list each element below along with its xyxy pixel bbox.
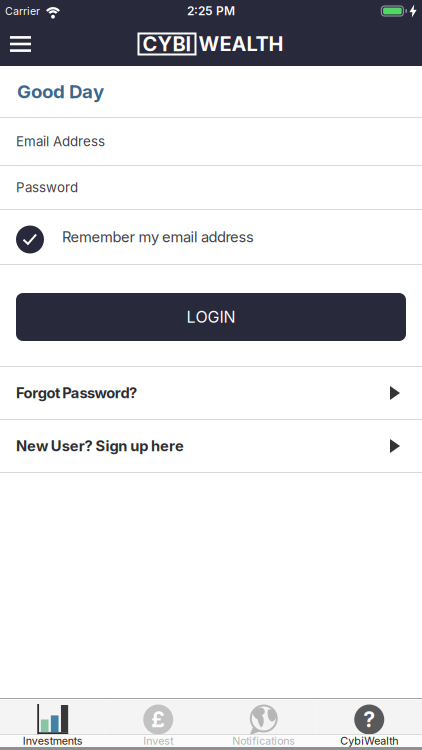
button[interactable]: Email Address	[0, 118, 422, 165]
staticText: Password	[16, 180, 78, 195]
staticText: LOGIN	[186, 308, 235, 326]
button[interactable]: New User? Sign up here	[0, 420, 422, 472]
staticText: New User? Sign up here	[16, 437, 184, 455]
staticText: Forgot Password?	[16, 384, 137, 402]
staticText: WEALTH	[198, 32, 283, 56]
staticText: ?	[363, 707, 375, 732]
button[interactable]: Menu	[0, 36, 31, 52]
button[interactable]: ?	[316, 699, 422, 747]
button[interactable]: Remember my email address	[0, 210, 422, 264]
staticText: Carrier	[5, 5, 40, 17]
staticText: £	[151, 707, 165, 732]
button[interactable]: LOGIN	[16, 293, 406, 341]
button[interactable]: Notifications	[211, 699, 316, 747]
button[interactable]: £	[105, 699, 211, 747]
staticText: Remember my email address	[62, 228, 254, 246]
staticText: Good Day	[17, 80, 104, 102]
button[interactable]: Forgot Password?	[0, 367, 422, 419]
staticText: Notifications	[232, 735, 295, 747]
button[interactable]: Investments	[0, 699, 105, 747]
staticText: CybiWealth	[340, 735, 398, 747]
staticText: CYBI	[142, 32, 191, 56]
button[interactable]: Password	[0, 166, 422, 209]
staticText: Invest	[143, 735, 173, 747]
staticText: Email Address	[16, 134, 105, 149]
staticText: 2:25 PM	[187, 4, 235, 18]
staticText: Investments	[23, 735, 83, 747]
